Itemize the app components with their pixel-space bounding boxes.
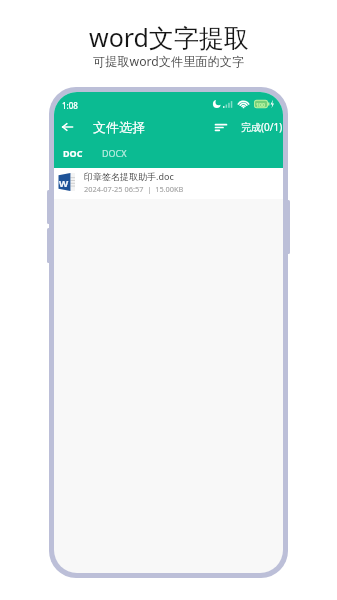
staticText: W (59, 177, 69, 190)
button[interactable]: Sort (210, 116, 232, 138)
staticText: 文件选择 (93, 119, 145, 135)
staticText: 100 (256, 101, 265, 108)
staticText: 1:08 (62, 100, 78, 111)
button[interactable]: DOC (54, 142, 92, 162)
staticText: word文字提取 (89, 20, 249, 54)
staticText: DOCX (102, 147, 127, 159)
button[interactable]: Back (56, 116, 78, 138)
button[interactable]: DOCX (95, 142, 134, 162)
staticText: 2024-07-25 06:57 | 15.00KB (84, 184, 184, 194)
button[interactable]: W (54, 168, 283, 199)
staticText: 印章签名提取助手.doc (84, 170, 174, 182)
staticText: DOC (63, 147, 83, 159)
button[interactable]: 完成(0/1) (237, 117, 283, 137)
staticText: 可提取word文件里面的文字 (93, 53, 245, 70)
staticText: 完成(0/1) (241, 120, 283, 134)
